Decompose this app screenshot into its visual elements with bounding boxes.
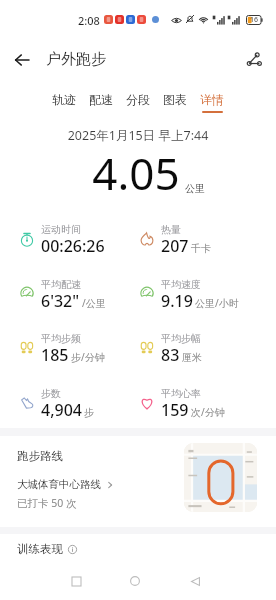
- staticText: 已打卡 50 次: [17, 496, 77, 510]
- button[interactable]: 平均速度: [120, 271, 258, 319]
- button[interactable]: Share: [240, 46, 268, 74]
- staticText: 9.19: [161, 290, 193, 312]
- staticText: 平均步幅: [161, 332, 201, 345]
- staticText: 图表: [157, 92, 193, 107]
- button[interactable]: Route map: [184, 443, 257, 512]
- staticText: 2:08: [78, 13, 100, 28]
- button[interactable]: 大城体育中心路线: [17, 478, 114, 491]
- staticText: 公里: [185, 182, 205, 195]
- staticText: 207: [161, 235, 189, 257]
- staticText: 热量: [161, 223, 181, 236]
- staticText: 大城体育中心路线: [17, 478, 101, 491]
- staticText: 跑步路线: [17, 449, 63, 463]
- button[interactable]: 图表: [157, 88, 193, 114]
- button[interactable]: 步数: [0, 380, 138, 428]
- staticText: 步/分钟: [71, 350, 105, 364]
- button[interactable]: 平均步频: [0, 325, 138, 373]
- button[interactable]: Home: [122, 568, 148, 594]
- button[interactable]: 平均步幅: [120, 325, 258, 373]
- button[interactable]: 轨迹: [46, 88, 82, 114]
- staticText: 83: [161, 344, 180, 366]
- staticText: 轨迹: [46, 92, 82, 107]
- staticText: 16: [250, 15, 259, 25]
- staticText: 配速: [83, 92, 119, 107]
- staticText: 平均心率: [161, 387, 201, 400]
- button[interactable]: 配速: [83, 88, 119, 114]
- staticText: 厘米: [182, 351, 202, 364]
- staticText: 运动时间: [41, 223, 81, 236]
- staticText: 分段: [120, 92, 156, 107]
- staticText: 00:26:26: [41, 235, 105, 257]
- staticText: 步数: [41, 387, 61, 400]
- button[interactable]: 训练表现: [17, 542, 77, 556]
- staticText: 2025年1月15日 早上7:44: [0, 127, 276, 144]
- button[interactable]: 详情: [194, 88, 230, 114]
- staticText: 4.05: [0, 143, 274, 203]
- button[interactable]: 热量: [120, 216, 258, 264]
- button[interactable]: 平均配速: [0, 271, 138, 319]
- staticText: 步: [84, 406, 94, 419]
- staticText: 185: [41, 344, 69, 366]
- button[interactable]: Back: [182, 568, 208, 594]
- staticText: 详情: [194, 92, 230, 107]
- staticText: 平均步频: [41, 332, 81, 345]
- staticText: /公里: [82, 296, 106, 310]
- staticText: 户外跑步: [46, 50, 106, 69]
- staticText: 4,904: [41, 399, 82, 421]
- staticText: 千卡: [191, 242, 211, 255]
- button[interactable]: 平均心率: [120, 380, 258, 428]
- staticText: 平均速度: [161, 278, 201, 291]
- staticText: 次/分钟: [191, 405, 225, 419]
- button[interactable]: Back: [8, 44, 36, 76]
- staticText: 平均配速: [41, 278, 81, 291]
- button[interactable]: 分段: [120, 88, 156, 114]
- staticText: 6'32": [41, 290, 80, 312]
- staticText: 公里/小时: [195, 296, 239, 310]
- button[interactable]: 运动时间: [0, 216, 138, 264]
- staticText: 159: [161, 399, 189, 421]
- staticText: 训练表现: [17, 542, 63, 556]
- button[interactable]: Recents: [63, 568, 89, 594]
